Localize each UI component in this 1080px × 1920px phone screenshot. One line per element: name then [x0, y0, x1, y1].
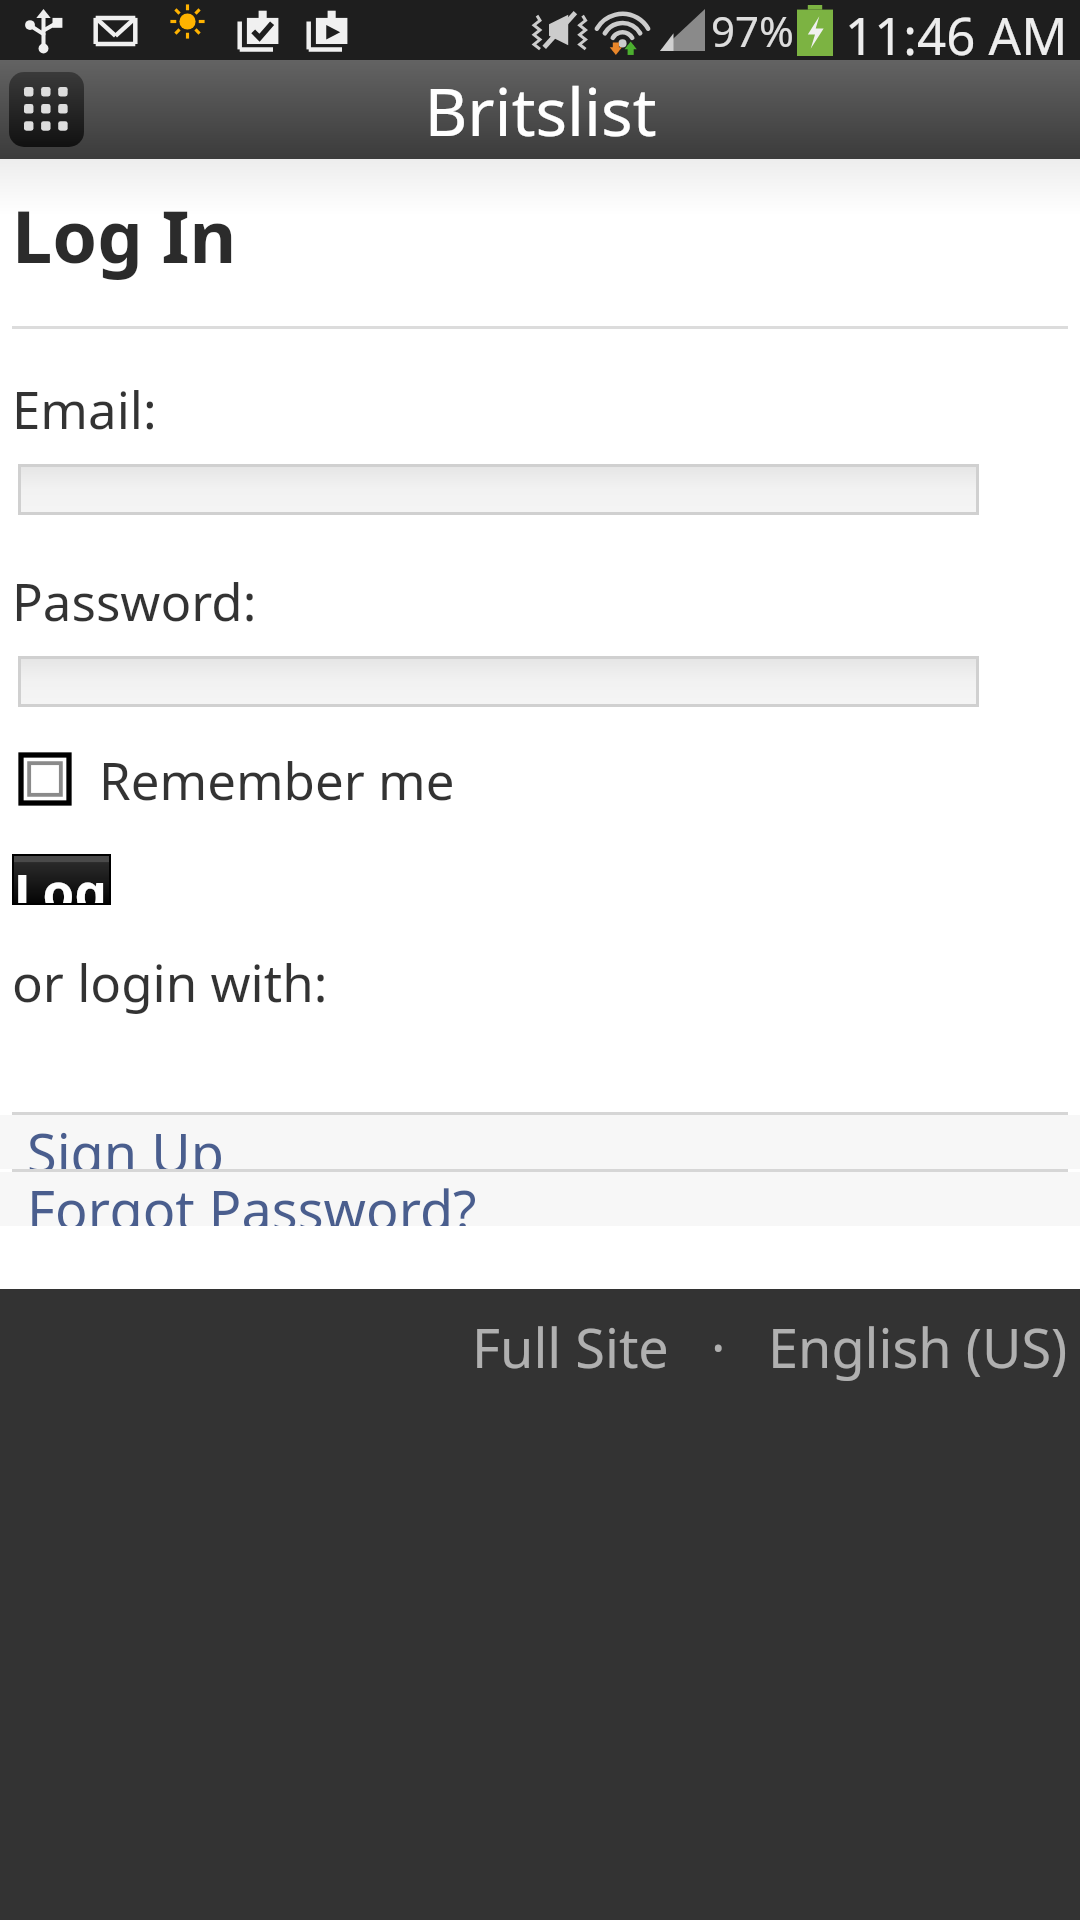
button[interactable]: [21, 467, 976, 512]
staticText: Sign Up: [27, 1115, 224, 1169]
button[interactable]: Forgot Password?: [0, 1172, 1080, 1226]
button[interactable]: Full Site: [472, 1310, 669, 1384]
button[interactable]: Sign Up: [0, 1115, 1080, 1169]
staticText: Password:: [12, 566, 257, 635]
staticText: Login: [14, 856, 109, 903]
button[interactable]: English (US): [768, 1310, 1068, 1384]
staticText: ·: [669, 1310, 768, 1384]
staticText: Email:: [12, 374, 157, 443]
button[interactable]: [21, 659, 976, 704]
staticText: Full Site: [472, 1310, 669, 1384]
staticText: Log In: [12, 186, 237, 284]
button[interactable]: Menu: [9, 72, 84, 147]
staticText: 11:46 AM: [845, 0, 1068, 60]
staticText: or login with:: [12, 947, 328, 1016]
staticText: English (US): [768, 1310, 1068, 1384]
staticText: Britslist: [424, 65, 657, 155]
button[interactable]: Remember me: [21, 740, 455, 818]
staticText: Remember me: [99, 745, 455, 814]
staticText: 97%: [711, 2, 794, 59]
button[interactable]: Login: [14, 856, 109, 903]
staticText: Forgot Password?: [27, 1172, 477, 1226]
